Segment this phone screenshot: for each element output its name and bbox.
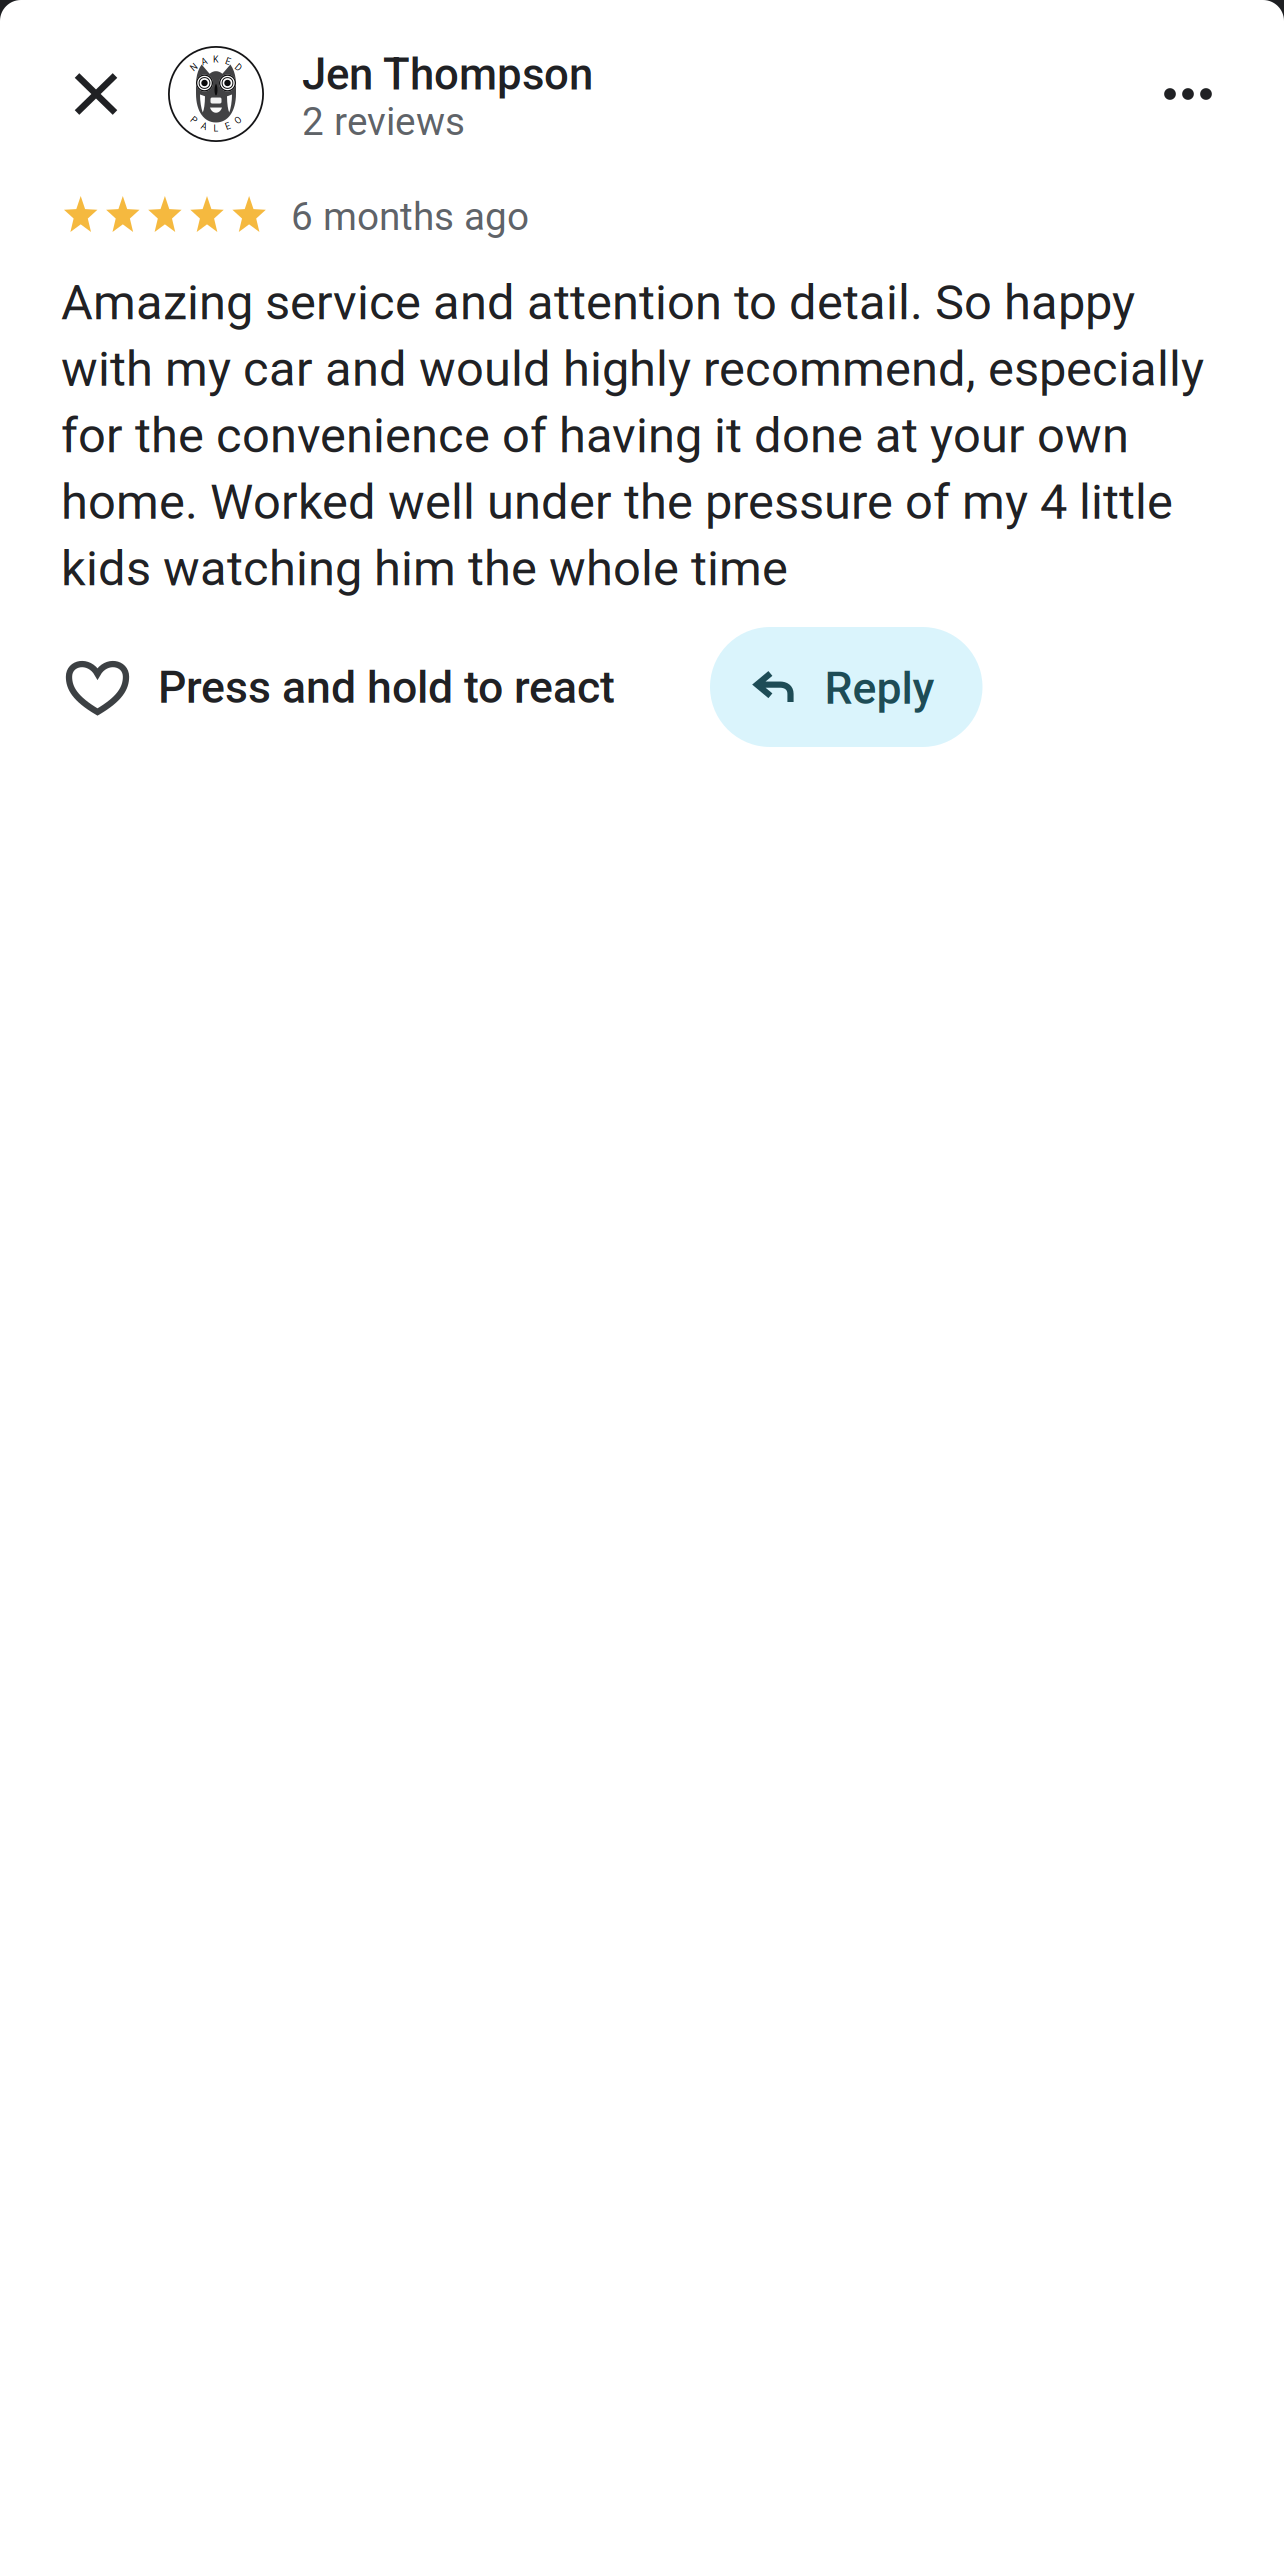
- staticText: L: [213, 123, 218, 134]
- button[interactable]: N: [168, 46, 593, 145]
- staticText: Press and hold to react: [158, 661, 615, 714]
- staticText: 6 months ago: [291, 194, 529, 239]
- staticText: P: [213, 123, 219, 134]
- staticText: A: [213, 123, 219, 134]
- staticText: Amazing service and attention to detail.…: [61, 274, 1204, 597]
- staticText: E: [213, 54, 218, 65]
- button[interactable]: Reply: [710, 627, 982, 747]
- staticText: Reply: [824, 662, 934, 715]
- staticText: D: [213, 54, 219, 65]
- staticText: 2 reviews: [302, 99, 465, 145]
- button[interactable]: More options: [1140, 46, 1236, 142]
- staticText: N: [213, 54, 219, 65]
- staticText: Jen Thompson: [302, 49, 593, 100]
- staticText: O: [213, 123, 219, 134]
- button[interactable]: Press and hold to react: [63, 627, 615, 747]
- staticText: E: [213, 123, 218, 134]
- staticText: K: [213, 54, 219, 65]
- staticText: A: [213, 54, 219, 65]
- button[interactable]: Close: [48, 46, 144, 142]
